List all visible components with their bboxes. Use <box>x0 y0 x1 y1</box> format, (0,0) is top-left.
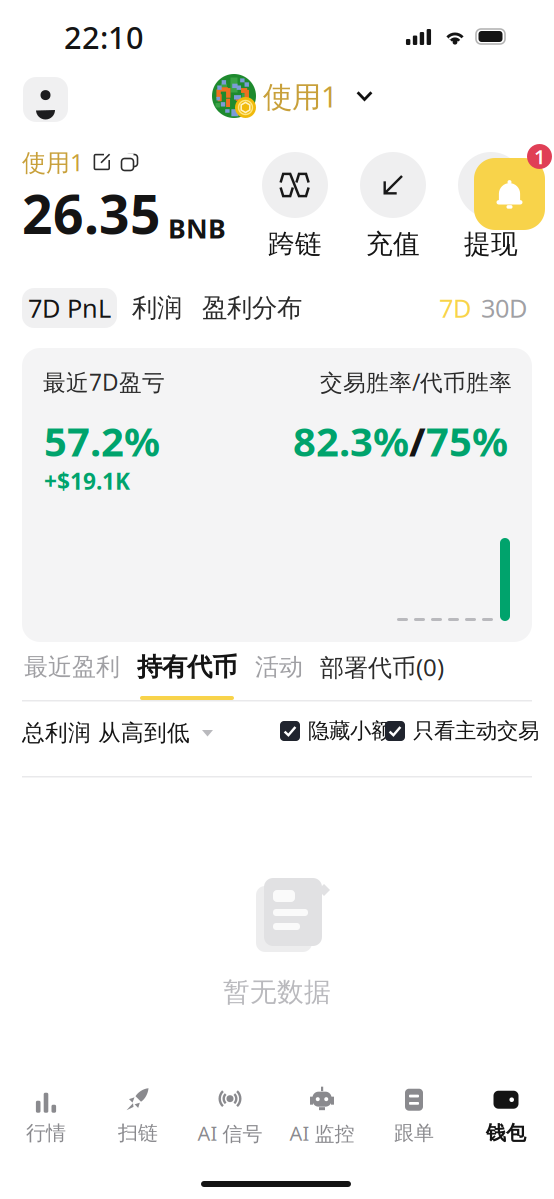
staticText: AI 信号 <box>197 1120 262 1146</box>
button[interactable]: AI 信号 <box>184 1087 276 1145</box>
button[interactable]: 提现 <box>458 152 524 258</box>
button[interactable]: 7D <box>434 288 476 328</box>
button[interactable]: 30D <box>476 288 532 328</box>
staticText: 26.35 <box>22 178 161 249</box>
staticText: 活动 <box>255 652 303 682</box>
staticText: 只看主动交易 <box>413 718 539 744</box>
staticText: AI 监控 <box>289 1120 354 1146</box>
staticText: 部署代币(0) <box>320 651 444 683</box>
button[interactable]: Profile <box>23 77 68 122</box>
staticText: 钱包 <box>486 1121 526 1145</box>
staticText: 最近盈利 <box>24 652 120 682</box>
button[interactable]: 总利润 从高到低 <box>22 718 213 748</box>
button[interactable]: 只看主动交易 <box>385 716 545 746</box>
staticText: 使用1 <box>263 76 338 115</box>
button[interactable]: Notifications <box>474 144 554 234</box>
staticText: BNB <box>168 210 226 246</box>
staticText: 提现 <box>464 228 518 260</box>
staticText: 7D <box>439 291 471 325</box>
staticText: 75% <box>426 414 508 467</box>
button[interactable]: 使用1 <box>212 74 373 118</box>
staticText: 充值 <box>366 228 420 260</box>
button[interactable]: 充值 <box>360 152 426 258</box>
staticText: 1 <box>534 143 545 170</box>
staticText: +$19.1K <box>44 466 130 496</box>
button[interactable]: 利润 <box>117 288 197 328</box>
button[interactable]: 跨链 <box>262 152 328 258</box>
staticText: 22:10 <box>64 17 144 57</box>
button[interactable]: 隐藏小额 <box>280 716 398 746</box>
button[interactable]: 部署代币(0) <box>318 652 446 700</box>
button[interactable]: 活动 <box>252 652 306 700</box>
staticText: 30D <box>481 291 527 325</box>
button[interactable]: 跟单 <box>368 1087 460 1145</box>
staticText: 跨链 <box>268 228 322 260</box>
button[interactable]: Rename wallet <box>93 153 111 171</box>
button[interactable]: 行情 <box>0 1087 92 1145</box>
staticText: 暂无数据 <box>223 976 331 1008</box>
staticText: 盈利分布 <box>202 292 302 323</box>
staticText: 使用1 <box>22 146 84 178</box>
staticText: 跟单 <box>394 1121 434 1145</box>
staticText: 7D PnL <box>28 291 111 325</box>
button[interactable]: 扫链 <box>92 1087 184 1145</box>
staticText: 最近7D盈亏 <box>43 367 165 397</box>
staticText: 交易胜率/代币胜率 <box>320 367 512 397</box>
staticText: 总利润 从高到低 <box>22 719 190 747</box>
button[interactable]: 最近盈利 <box>22 652 122 700</box>
staticText: 57.2% <box>44 414 160 467</box>
button[interactable]: 钱包 <box>460 1087 552 1145</box>
button[interactable]: 7D PnL <box>22 288 117 328</box>
staticText: 行情 <box>26 1121 66 1145</box>
staticText: 扫链 <box>118 1121 158 1145</box>
staticText: 持有代币 <box>137 651 237 682</box>
staticText: 利润 <box>132 292 182 323</box>
button[interactable]: AI 监控 <box>276 1087 368 1145</box>
button[interactable]: 盈利分布 <box>197 288 307 328</box>
staticText: / <box>409 414 426 467</box>
button[interactable]: 持有代币 <box>134 652 240 700</box>
staticText: 82.3% <box>293 414 409 467</box>
button[interactable]: Copy address <box>120 153 138 171</box>
staticText: 隐藏小额 <box>308 718 392 744</box>
